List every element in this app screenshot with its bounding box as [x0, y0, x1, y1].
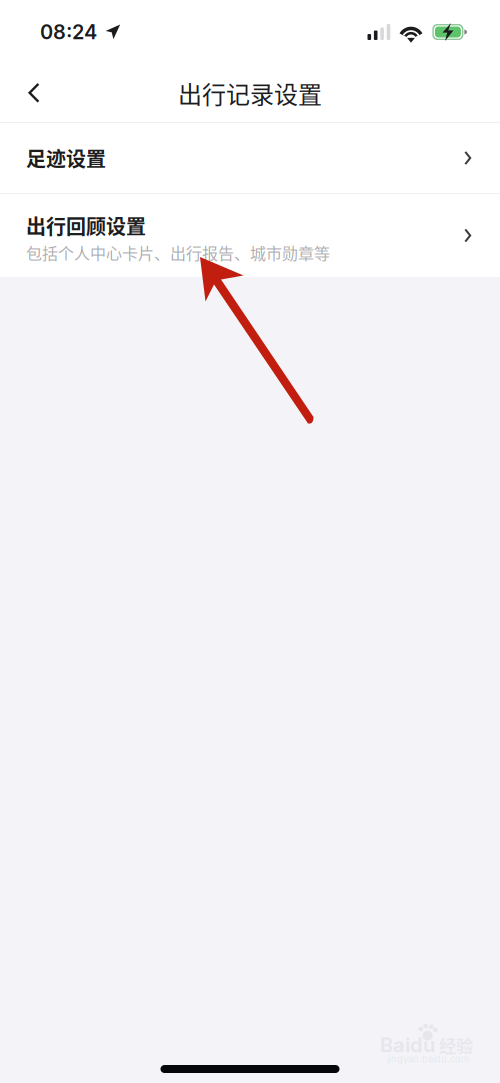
button[interactable]: Back [14, 71, 54, 115]
staticText: 足迹设置 [26, 143, 106, 172]
button[interactable]: 足迹设置 [0, 123, 500, 193]
staticText: 包括个人中心卡片、出行报告、城市勋章等 [26, 241, 330, 264]
staticText: 出行回顾设置 [26, 211, 146, 240]
staticText: jingyan.baidu.com [387, 1053, 469, 1065]
staticText: 08:24 [40, 20, 97, 44]
staticText: 出行记录设置 [178, 76, 322, 110]
staticText: 经验 [439, 1032, 473, 1058]
button[interactable]: 出行回顾设置 [0, 194, 500, 277]
staticText: Baidu [380, 1033, 435, 1057]
